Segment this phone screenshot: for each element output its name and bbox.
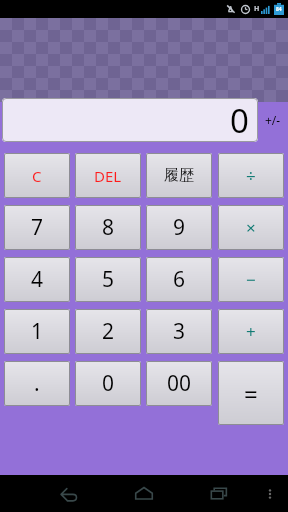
staticText: 1 [31, 317, 44, 346]
button[interactable]: 履歴 [146, 153, 212, 198]
staticText: DEL [94, 166, 122, 186]
staticText: = [244, 377, 258, 410]
button[interactable]: Back [52, 477, 86, 511]
staticText: 0 [102, 369, 115, 398]
staticText: 履歴 [164, 166, 194, 185]
button[interactable]: Multiply [218, 205, 284, 250]
button[interactable]: 5 [75, 257, 141, 302]
button[interactable]: Plus minus [258, 98, 288, 142]
button[interactable]: Recent apps [202, 477, 236, 511]
staticText: 84 [276, 6, 282, 13]
button[interactable]: 4 [4, 257, 70, 302]
staticText: 5 [102, 265, 115, 294]
button[interactable]: Divide [218, 153, 284, 198]
staticText: + [246, 320, 256, 343]
staticText: 8 [102, 213, 115, 242]
button[interactable]: DEL [75, 153, 141, 198]
button[interactable]: C [4, 153, 70, 198]
button[interactable]: Subtract [218, 257, 284, 302]
staticText: 7 [31, 213, 44, 242]
staticText: − [246, 268, 256, 291]
button[interactable]: 8 [75, 205, 141, 250]
button[interactable]: 00 [146, 361, 212, 406]
button[interactable]: 1 [4, 309, 70, 354]
button[interactable]: 2 [75, 309, 141, 354]
button[interactable]: More options [260, 484, 280, 504]
staticText: 00 [167, 369, 192, 398]
staticText: H [254, 4, 260, 14]
staticText: 9 [173, 213, 186, 242]
staticText: C [32, 166, 42, 186]
button[interactable]: 6 [146, 257, 212, 302]
staticText: 4 [31, 265, 44, 294]
staticText: 0 [230, 98, 249, 142]
staticText: . [34, 369, 40, 398]
staticText: 6 [173, 265, 186, 294]
staticText: 3 [173, 317, 186, 346]
staticText: 2 [102, 317, 115, 346]
button[interactable]: . [4, 361, 70, 406]
button[interactable]: 0 [2, 98, 258, 142]
staticText: +/- [265, 112, 281, 128]
button[interactable]: Home [127, 477, 161, 511]
button[interactable]: Add [218, 309, 284, 354]
button[interactable]: 9 [146, 205, 212, 250]
button[interactable]: 3 [146, 309, 212, 354]
staticText: ÷ [246, 164, 256, 187]
staticText: × [246, 216, 256, 239]
button[interactable]: Equals [218, 361, 284, 425]
button[interactable]: 0 [75, 361, 141, 406]
button[interactable]: 7 [4, 205, 70, 250]
